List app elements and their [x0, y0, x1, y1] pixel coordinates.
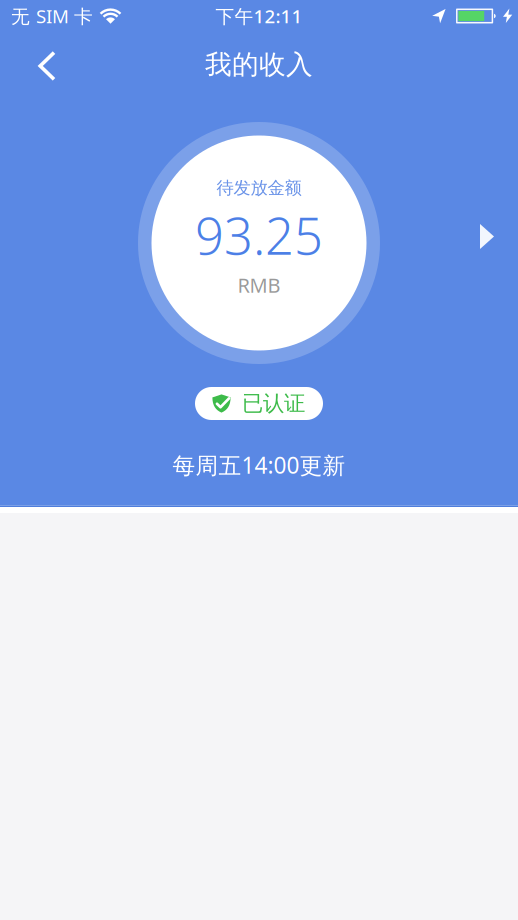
staticText: 每周五14:00更新: [172, 450, 345, 480]
button[interactable]: Back: [0, 32, 55, 103]
staticText: 待发放金额: [216, 177, 301, 199]
button[interactable]: 已认证: [195, 387, 323, 420]
staticText: 无 SIM 卡: [11, 4, 93, 28]
staticText: 下午12:11: [215, 4, 302, 28]
staticText: 93.25: [195, 201, 323, 269]
staticText: RMB: [237, 272, 280, 298]
button[interactable]: 下一页: [472, 216, 502, 257]
staticText: 已认证: [242, 390, 305, 417]
staticText: 我的收入: [205, 48, 313, 81]
